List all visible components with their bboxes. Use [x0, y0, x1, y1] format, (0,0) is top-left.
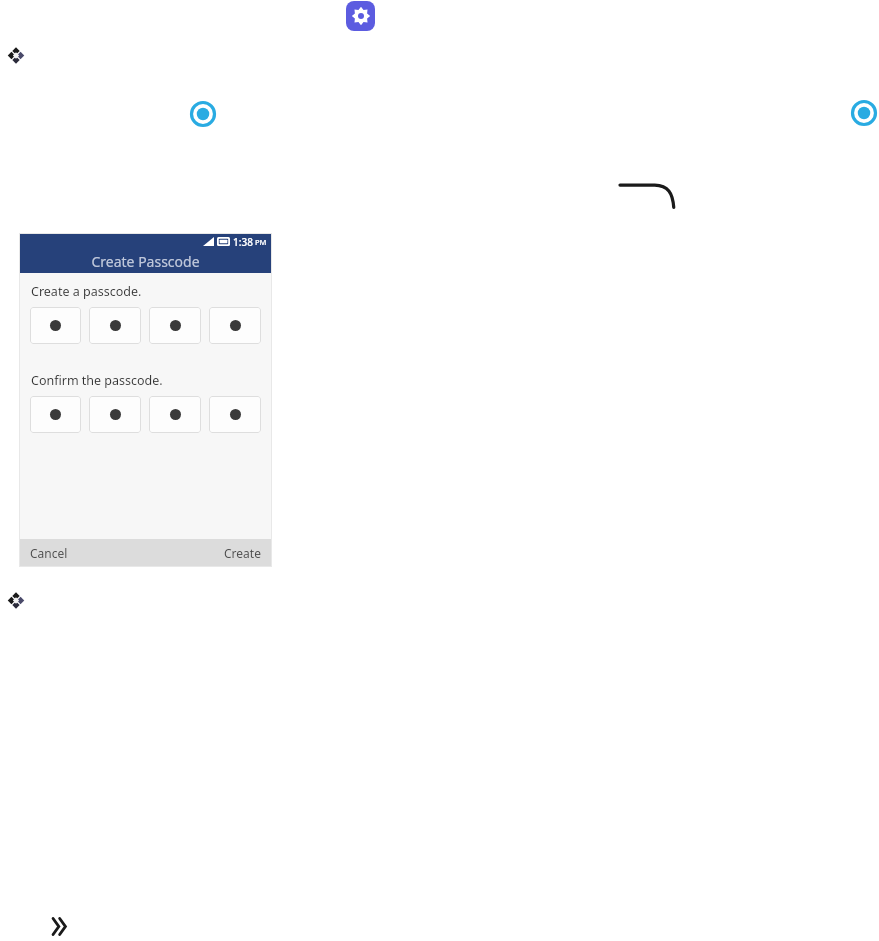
- button[interactable]: [209, 396, 261, 433]
- staticText: Cancel: [30, 545, 68, 561]
- staticText: PM: [255, 237, 267, 247]
- button[interactable]: [149, 396, 201, 433]
- button[interactable]: [30, 307, 81, 344]
- button[interactable]: [209, 307, 261, 344]
- button[interactable]: [89, 307, 141, 344]
- button[interactable]: Settings: [346, 1, 375, 31]
- button[interactable]: [149, 307, 201, 344]
- staticText: Confirm the passcode.: [31, 372, 163, 389]
- button[interactable]: [89, 396, 141, 433]
- button[interactable]: Selected option: [187, 98, 219, 130]
- button[interactable]: Create: [145, 539, 272, 567]
- staticText: 1:38: [233, 235, 253, 249]
- staticText: Create a passcode.: [31, 283, 142, 300]
- staticText: Create Passcode: [91, 252, 200, 271]
- button[interactable]: [30, 396, 81, 433]
- staticText: Create: [224, 545, 261, 561]
- button[interactable]: Selected option: [848, 97, 879, 129]
- button[interactable]: Cancel: [19, 539, 145, 567]
